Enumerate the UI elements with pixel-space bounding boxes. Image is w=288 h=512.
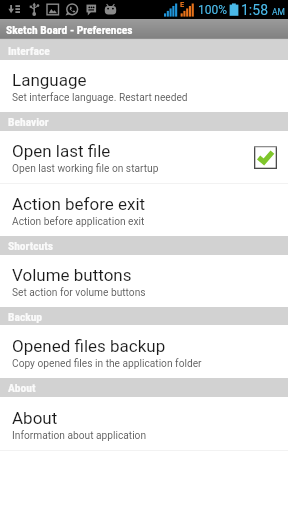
button[interactable]: About xyxy=(0,397,288,450)
staticText: AM xyxy=(272,7,285,17)
staticText: Set action for volume buttons xyxy=(12,287,146,299)
staticText: Interface xyxy=(8,44,50,57)
staticText: 100% xyxy=(198,3,228,17)
staticText: About xyxy=(8,381,36,394)
staticText: Opened files backup xyxy=(12,336,166,356)
staticText: E xyxy=(180,0,185,9)
staticText: 1:58 xyxy=(241,2,268,18)
button[interactable]: Volume buttons xyxy=(0,255,288,307)
staticText: Action before application exit xyxy=(12,216,145,228)
button[interactable]: Opened files backup xyxy=(0,325,288,378)
staticText: Information about application xyxy=(12,430,147,442)
button[interactable]: Open last file xyxy=(0,131,288,183)
staticText: Set interface language. Restart needed xyxy=(12,92,188,104)
staticText: Shortcuts xyxy=(8,239,53,252)
staticText: Action before exit xyxy=(12,194,146,214)
button[interactable]: Action before exit xyxy=(0,184,288,236)
button[interactable]: Language xyxy=(0,60,288,112)
staticText: Behavior xyxy=(8,115,49,128)
staticText: Open last file xyxy=(12,141,111,161)
staticText: Backup xyxy=(8,310,43,323)
staticText: Volume buttons xyxy=(12,265,132,285)
staticText: About xyxy=(12,408,58,428)
staticText: Open last working file on startup xyxy=(12,163,159,175)
staticText: Copy opened files in the application fol… xyxy=(12,358,202,370)
staticText: Sketch Board - Preferences xyxy=(6,23,133,36)
staticText: Language xyxy=(12,70,87,90)
